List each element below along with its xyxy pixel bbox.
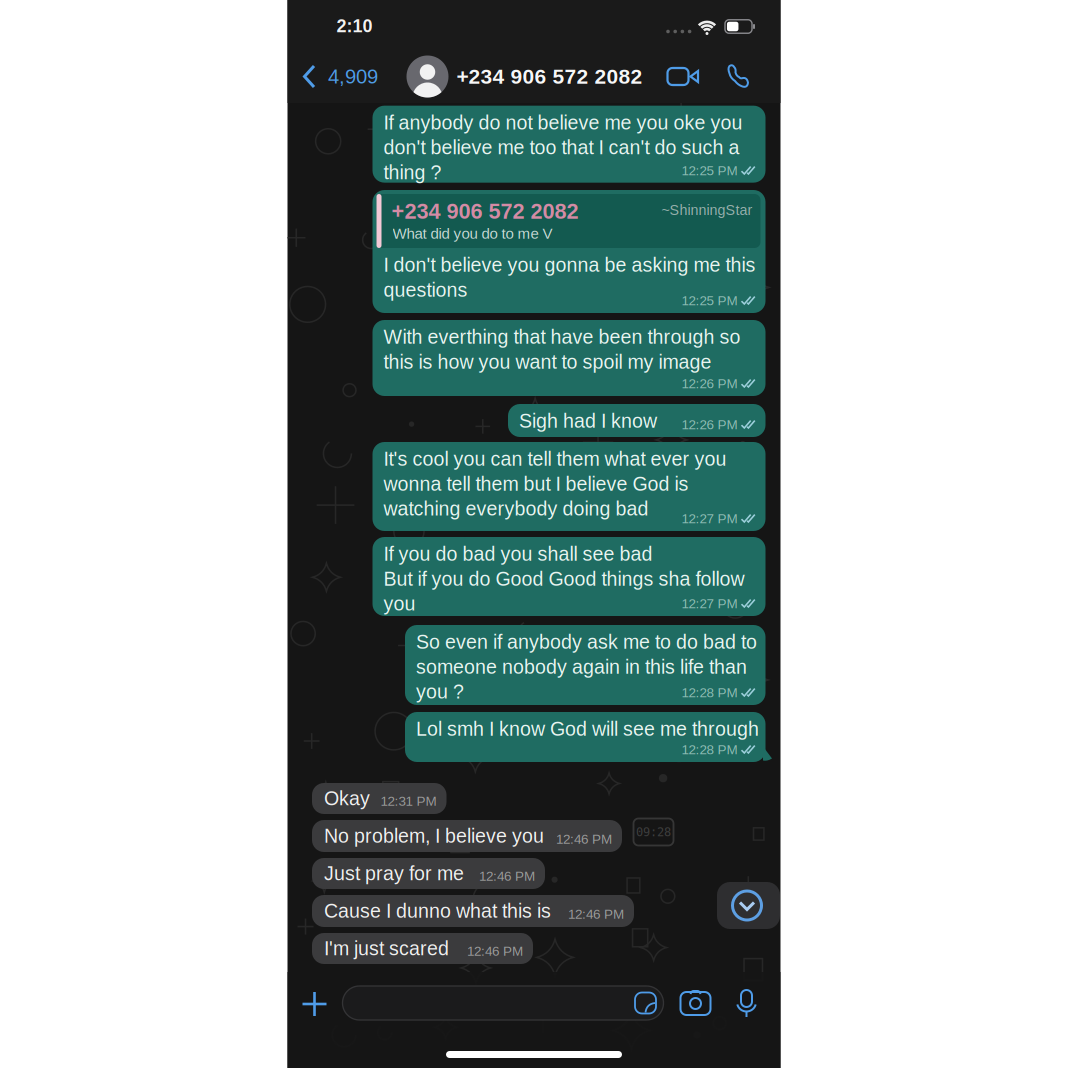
staticText: I'm just scared [324,938,449,959]
staticText: ~ShinningStar [661,202,752,218]
staticText: 09:28 [636,825,671,839]
staticText: Just pray for me [324,863,464,884]
staticText: So even if anybody ask me to do bad to [416,631,757,653]
staticText: questions [383,279,467,301]
staticText: watching everybody doing bad [383,498,648,520]
staticText: Cause I dunno what this is [324,900,551,922]
staticText: 12:26 PM [681,417,737,432]
button[interactable]: Scroll to bottom [717,882,780,929]
button[interactable]: Message [342,986,663,1020]
staticText: 12:27 PM [681,596,737,611]
staticText: this is how you want to spoil my image [383,351,711,373]
staticText: 12:25 PM [681,163,737,178]
staticText: I don't believe you gonna be asking me t… [383,254,755,276]
staticText: 2:10 [336,16,372,36]
staticText: 4,909 [328,65,378,88]
button[interactable]: Attach [302,992,326,1016]
staticText: 12:28 PM [681,685,737,700]
staticText: 12:46 PM [479,868,535,883]
staticText: 12:46 PM [467,943,523,958]
button[interactable]: Voice call [726,64,750,88]
button[interactable]: Camera [680,991,710,1015]
staticText: 12:46 PM [568,906,624,921]
staticText: you [383,593,415,615]
staticText: 12:46 PM [556,831,612,846]
staticText: But if you do Good Good things sha follo… [383,568,744,590]
staticText: wonna tell them but I believe God is [383,473,688,495]
button[interactable]: Back [303,64,378,89]
staticText: 12:27 PM [681,511,737,526]
staticText: 12:31 PM [380,793,436,808]
staticText: 12:28 PM [681,742,737,757]
staticText: Okay [324,788,370,809]
staticText: +234 906 572 2082 [456,65,642,88]
staticText: If anybody do not believe me you oke you [383,112,742,134]
staticText: With everthing that have been through so [383,326,740,348]
staticText: What did you do to me V [392,225,552,242]
staticText: don't believe me too that I can't do suc… [383,137,739,158]
button[interactable]: Video call [667,68,699,85]
staticText: If you do bad you shall see bad [383,543,652,565]
staticText: someone nobody again in this life than [416,656,747,678]
button[interactable]: Contact profile [406,55,448,97]
staticText: It's cool you can tell them what ever yo… [383,448,726,470]
staticText: Lol smh I know God will see me through [416,718,759,740]
button[interactable]: Record voice message [734,990,758,1018]
staticText: 12:26 PM [681,376,737,391]
staticText: you ? [416,681,464,703]
staticText: No problem, I believe you [324,825,544,847]
staticText: thing ? [383,161,441,183]
staticText: 12:25 PM [681,293,737,308]
staticText: +234 906 572 2082 [391,199,578,223]
staticText: Sigh had I know [519,410,657,432]
